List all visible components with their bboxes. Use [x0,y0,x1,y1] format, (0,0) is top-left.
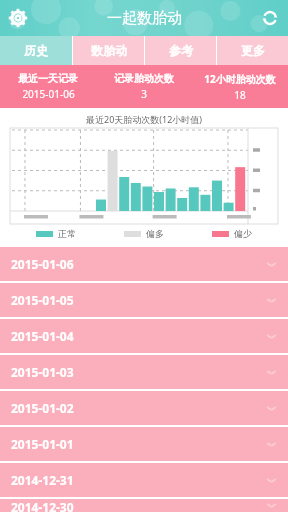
staticText: 2015-01-03 [11,364,74,380]
staticText: 2015-01-06 [11,256,74,272]
button[interactable]: 数胎动 [73,36,144,65]
staticText: 历史 [24,43,48,58]
staticText: 偏多 [146,228,164,239]
staticText: 数胎动 [91,43,127,58]
button[interactable]: 2015-01-04 [0,319,288,353]
button[interactable]: Refresh [252,0,288,36]
staticText: 参考 [169,43,193,58]
staticText: 记录胎动次数 [114,72,174,85]
staticText: 2015-01-05 [11,292,74,308]
button[interactable]: 2015-01-03 [0,355,288,389]
button[interactable]: 2015-01-05 [0,283,288,317]
staticText: 18 [234,88,246,102]
staticText: 3 [141,87,147,101]
button[interactable]: 2015-01-06 [0,247,288,281]
button[interactable]: 2015-01-02 [0,391,288,425]
staticText: 2015-01-02 [11,400,74,416]
staticText: 最近一天记录 [18,72,78,85]
button[interactable]: 2014-12-31 [0,463,288,497]
staticText: 2014-12-31 [11,472,74,488]
staticText: 更多 [241,43,265,58]
staticText: 2014-12-30 [11,499,74,512]
staticText: 2015-01-04 [11,328,74,344]
button[interactable]: 参考 [145,36,216,65]
staticText: 2015-01-06 [22,87,75,101]
button[interactable]: 2015-01-01 [0,427,288,461]
button[interactable]: 2014-12-30 [0,499,288,512]
button[interactable]: Settings [0,0,36,36]
button[interactable]: 历史 [0,36,72,65]
staticText: 偏少 [234,228,252,239]
staticText: 2015-01-01 [11,436,74,452]
staticText: 最近20天胎动次数(12小时值) [0,113,288,125]
button[interactable]: 更多 [217,36,288,65]
staticText: 一起数胎动 [107,9,182,28]
staticText: 正常 [58,228,76,239]
staticText: 12小时胎动次数 [204,72,276,86]
